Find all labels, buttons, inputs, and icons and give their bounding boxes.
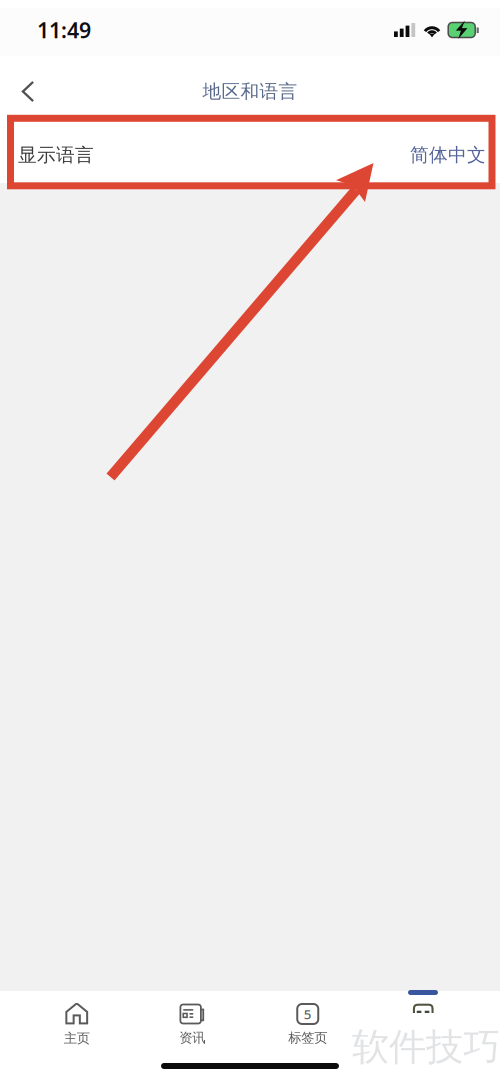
staticText: 我的 bbox=[410, 1029, 436, 1046]
staticText: 简体中文 bbox=[410, 143, 486, 166]
button[interactable]: 我的 bbox=[365, 1003, 481, 1046]
staticText: 软件技巧 bbox=[352, 1024, 500, 1070]
staticText: 5 bbox=[304, 1005, 312, 1023]
staticText: 11:49 bbox=[37, 16, 91, 44]
button[interactable]: Back bbox=[6, 65, 50, 109]
button[interactable]: 主页 bbox=[19, 1003, 134, 1046]
staticText: 标签页 bbox=[288, 1029, 327, 1046]
staticText: 资讯 bbox=[179, 1029, 205, 1046]
staticText: 主页 bbox=[64, 1030, 90, 1046]
staticText: 显示语言 bbox=[18, 143, 94, 166]
button[interactable]: 显示语言 bbox=[0, 119, 500, 183]
button[interactable]: 5 bbox=[250, 1003, 365, 1046]
button[interactable]: 资讯 bbox=[134, 1003, 250, 1046]
staticText: 地区和语言 bbox=[202, 80, 297, 103]
